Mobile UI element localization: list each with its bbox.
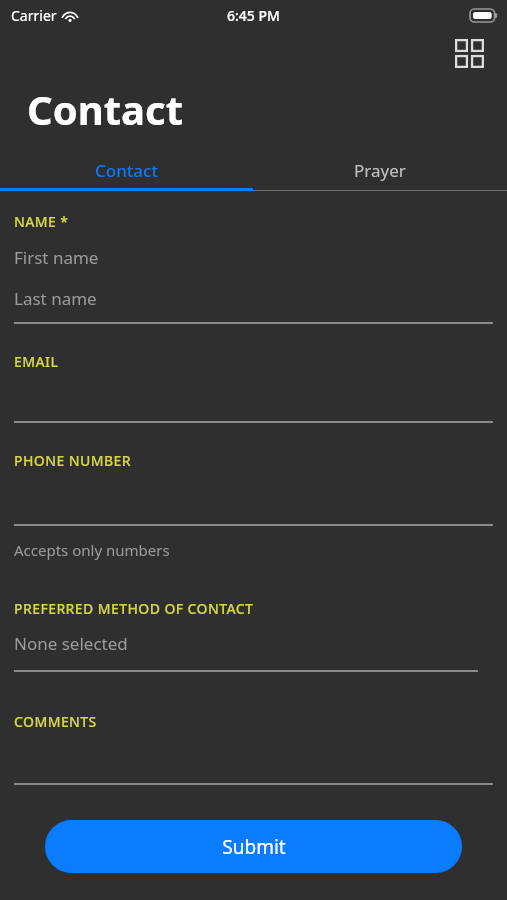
button[interactable]: None selected [14,632,128,655]
staticText: COMMENTS [14,712,97,731]
staticText: Contact [27,82,183,136]
staticText: PHONE NUMBER [14,451,131,470]
staticText: Contact [95,159,158,182]
staticText: First name [14,246,99,269]
staticText: PREFERRED METHOD OF CONTACT [14,599,254,618]
staticText: Carrier [11,6,57,25]
staticText: EMAIL [14,352,59,371]
staticText: Submit [222,834,286,860]
button[interactable]: Prayer [253,150,507,190]
staticText: 6:45 PM [227,6,280,25]
staticText: NAME * [14,212,69,231]
button[interactable]: Contact [0,150,253,190]
button[interactable]: Submit [45,820,462,873]
staticText: Last name [14,287,97,310]
staticText: Accepts only numbers [14,540,170,560]
button[interactable]: Menu grid [447,31,491,75]
staticText: Prayer [354,159,406,182]
